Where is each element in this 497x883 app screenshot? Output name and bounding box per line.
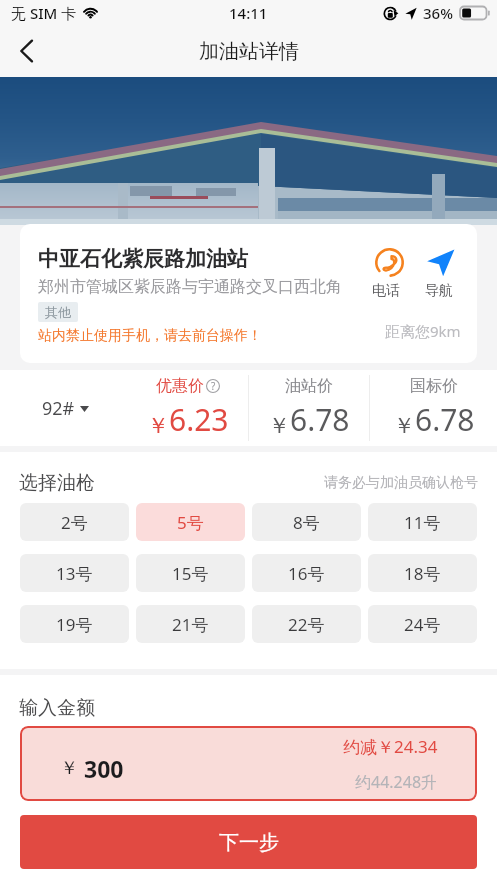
- staticText: 18号: [404, 562, 441, 585]
- staticText: 请务必与加油员确认枪号: [324, 474, 478, 492]
- staticText: 300: [84, 753, 124, 784]
- staticText: 站内禁止使用手机，请去前台操作！: [38, 327, 262, 345]
- staticText: 2号: [61, 511, 88, 534]
- staticText: 16号: [288, 562, 325, 585]
- button[interactable]: 16号: [252, 554, 361, 592]
- button[interactable]: 8号: [252, 503, 361, 541]
- button[interactable]: 18号: [368, 554, 477, 592]
- staticText: 6.78: [415, 399, 475, 440]
- staticText: 36%: [423, 3, 453, 23]
- staticText: 22号: [288, 613, 325, 636]
- staticText: 国标价: [410, 376, 458, 396]
- staticText: ￥: [60, 757, 78, 780]
- button[interactable]: 下一步: [20, 815, 477, 869]
- staticText: 11号: [404, 511, 441, 534]
- staticText: ￥: [393, 412, 415, 440]
- staticText: 下一步: [219, 830, 279, 855]
- button[interactable]: 92#: [42, 396, 89, 421]
- staticText: 导航: [425, 282, 453, 300]
- staticText: 6.23: [169, 399, 229, 440]
- staticText: 8号: [293, 511, 320, 534]
- staticText: 距离您9km: [385, 321, 461, 341]
- button[interactable]: ￥: [20, 726, 477, 801]
- button[interactable]: 导航: [418, 248, 459, 300]
- staticText: 选择油枪: [19, 471, 95, 495]
- staticText: 19号: [56, 613, 93, 636]
- staticText: ?: [211, 379, 216, 393]
- staticText: 15号: [172, 562, 209, 585]
- button[interactable]: Back: [0, 25, 52, 77]
- button[interactable]: 21号: [136, 605, 245, 643]
- staticText: 中亚石化紫辰路加油站: [38, 246, 248, 272]
- staticText: 其他: [45, 304, 71, 320]
- staticText: 14:11: [229, 3, 268, 23]
- staticText: 92#: [42, 396, 75, 421]
- staticText: ￥: [268, 412, 290, 440]
- staticText: 优惠价: [156, 376, 204, 396]
- button[interactable]: 15号: [136, 554, 245, 592]
- staticText: 13号: [56, 562, 93, 585]
- button[interactable]: 22号: [252, 605, 361, 643]
- button[interactable]: 13号: [20, 554, 129, 592]
- button[interactable]: 11号: [368, 503, 477, 541]
- staticText: 无 SIM 卡: [11, 3, 77, 23]
- button[interactable]: 5号: [136, 503, 245, 541]
- staticText: 5号: [177, 511, 204, 534]
- staticText: 郑州市管城区紫辰路与宇通路交叉口西北角: [38, 277, 342, 297]
- button[interactable]: 2号: [20, 503, 129, 541]
- staticText: 约减￥24.34: [343, 735, 438, 758]
- button[interactable]: 19号: [20, 605, 129, 643]
- button[interactable]: 24号: [368, 605, 477, 643]
- staticText: 油站价: [285, 376, 333, 396]
- staticText: 21号: [172, 613, 209, 636]
- staticText: ￥: [147, 412, 169, 440]
- staticText: 电话: [372, 282, 400, 300]
- button[interactable]: 电话: [365, 248, 406, 300]
- staticText: 加油站详情: [199, 39, 299, 64]
- staticText: 输入金额: [19, 696, 95, 720]
- staticText: 24号: [404, 613, 441, 636]
- staticText: 约44.248升: [355, 771, 438, 793]
- staticText: 6.78: [290, 399, 350, 440]
